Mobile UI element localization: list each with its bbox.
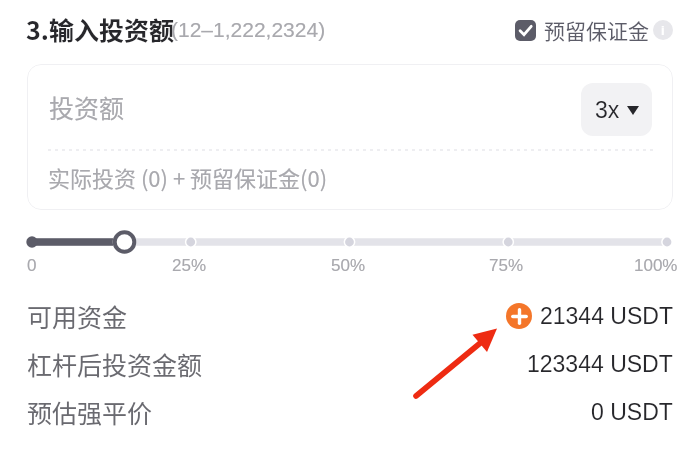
button[interactable]: 投资额 xyxy=(27,64,673,210)
button[interactable]: 预留保证金 xyxy=(515,15,649,45)
staticText: 3x xyxy=(595,97,620,123)
staticText: 21344 USDT xyxy=(540,303,673,329)
staticText: 0 USDT xyxy=(591,399,673,425)
staticText: i xyxy=(661,23,665,38)
staticText: 预估强平价 xyxy=(27,394,153,430)
button[interactable]: Investment amount slider xyxy=(0,228,700,258)
staticText: (12–1,222,2324) xyxy=(171,18,326,41)
staticText: 实际投资 (0) + 预留保证金(0) xyxy=(48,161,328,193)
button[interactable]: 预估强平价 xyxy=(0,394,700,430)
button[interactable]: 可用资金 xyxy=(0,298,700,334)
staticText: 3.输入投资额 xyxy=(26,11,174,47)
staticText: 25% xyxy=(172,256,207,275)
button[interactable]: 杠杆后投资金额 xyxy=(0,346,700,382)
button[interactable]: 3x xyxy=(581,83,652,136)
button[interactable]: Info xyxy=(653,20,673,40)
staticText: 100% xyxy=(634,256,678,275)
button[interactable]: Add funds xyxy=(506,303,532,329)
staticText: 可用资金 xyxy=(27,298,128,334)
staticText: 75% xyxy=(489,256,524,275)
staticText: 123344 USDT xyxy=(527,351,673,377)
staticText: 0 xyxy=(27,256,37,275)
staticText: 投资额 xyxy=(49,89,125,125)
staticText: 预留保证金 xyxy=(544,15,649,45)
staticText: 杠杆后投资金额 xyxy=(27,346,203,382)
staticText: 50% xyxy=(331,256,366,275)
